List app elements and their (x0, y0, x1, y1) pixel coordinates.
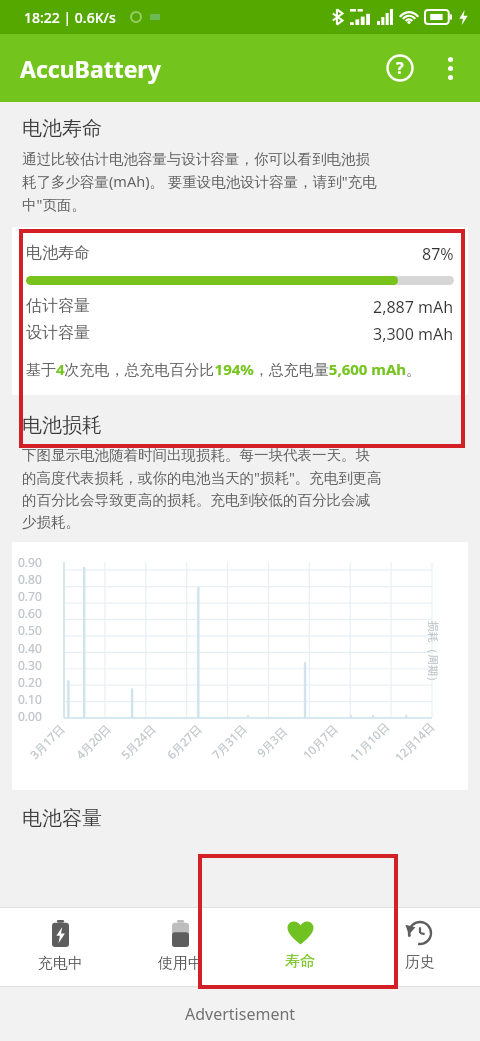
staticText: 2,887 mAh (373, 296, 454, 318)
staticText: 电池损耗 (22, 413, 102, 438)
staticText: 0.70 (18, 588, 42, 604)
staticText: 估计容量 (26, 296, 90, 316)
staticText: ? (396, 57, 404, 79)
staticText: 基于4次充电，总充电百分比194%，总充电量5,600 mAh。 (26, 359, 422, 379)
staticText: 电池容量 (22, 806, 102, 831)
staticText: 0.90 (18, 554, 42, 570)
staticText: 10月7日 (300, 721, 341, 763)
staticText: 18:22 | 0.6K/s (24, 8, 116, 27)
staticText: 电池寿命 (22, 116, 102, 141)
staticText: 7月31日 (209, 721, 250, 763)
staticText: 0.10 (18, 691, 42, 707)
staticText: 损耗（周期） (426, 621, 440, 687)
staticText: 0.60 (18, 605, 42, 621)
button[interactable]: 寿命 (240, 908, 360, 971)
staticText: 0.00 (18, 708, 42, 724)
button[interactable]: 充电中 (0, 908, 120, 973)
staticText: 下图显示电池随着时间出现损耗。每一块代表一天。块 的高度代表损耗，或你的电池当天… (22, 446, 382, 532)
staticText: 4月20日 (73, 721, 114, 763)
staticText: 5月24日 (118, 721, 159, 763)
staticText: 0.50 (18, 622, 42, 638)
button[interactable]: 历史 (360, 908, 480, 972)
staticText: 3,300 mAh (373, 323, 454, 345)
staticText: 3月17日 (27, 721, 68, 763)
staticText: 使用中 (158, 954, 203, 973)
staticText: 设计容量 (26, 323, 90, 343)
staticText: 历史 (405, 953, 435, 972)
staticText: 寿命 (285, 952, 315, 971)
staticText: 充电中 (38, 954, 83, 973)
staticText: 0.80 (18, 571, 42, 587)
button[interactable]: Advertisement (0, 987, 480, 1041)
staticText: 0.20 (18, 674, 42, 690)
staticText: 0.30 (18, 657, 42, 673)
staticText: Advertisement (185, 1003, 296, 1025)
staticText: 电池寿命 (26, 243, 90, 263)
staticText: 87% (422, 243, 454, 265)
staticText: 12月14日 (392, 719, 438, 765)
button[interactable]: 电池寿命 (12, 227, 468, 395)
staticText: 9月3日 (254, 723, 291, 761)
staticText: 6月27日 (164, 721, 205, 763)
staticText: 0.40 (18, 640, 42, 656)
staticText: 11月10日 (347, 719, 393, 765)
button[interactable]: 使用中 (120, 908, 240, 973)
button[interactable]: 0.90 (12, 542, 468, 790)
button[interactable]: More options (426, 44, 474, 92)
button[interactable]: Help (376, 44, 424, 92)
staticText: AccuBattery (20, 53, 161, 84)
staticText: 通过比较估计电池容量与设计容量，你可以看到电池损 耗了多少容量(mAh)。 要重… (22, 150, 377, 215)
